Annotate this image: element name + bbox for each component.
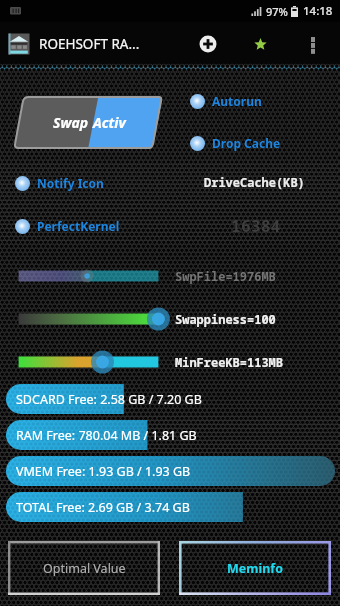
staticText: Activ bbox=[93, 113, 126, 132]
staticText: TOTAL Free: 2.69 GB / 3.74 GB bbox=[16, 499, 190, 516]
button[interactable]: Drop Cache bbox=[188, 133, 283, 153]
staticText: RAM Free: 780.04 MB / 1.81 GB bbox=[16, 427, 197, 444]
staticText: Autorun bbox=[212, 93, 262, 109]
button[interactable]: RAM Free: 780.04 MB / 1.81 GB bbox=[6, 420, 335, 450]
button[interactable]: Notify Icon bbox=[13, 173, 106, 193]
button[interactable]: Swap bbox=[13, 96, 163, 149]
staticText: Optimal Value bbox=[43, 560, 126, 577]
staticText: 97% bbox=[266, 4, 288, 19]
staticText: Drop Cache bbox=[212, 135, 281, 151]
staticText: 14:18 bbox=[303, 3, 333, 19]
staticText: 16384 bbox=[231, 214, 281, 236]
button[interactable]: Favorite bbox=[242, 26, 278, 62]
button[interactable]: Autorun bbox=[188, 91, 264, 111]
staticText: Meminfo bbox=[227, 560, 283, 577]
button[interactable]: MinFreeKB=113MB bbox=[8, 347, 170, 377]
button[interactable]: SDCARD Free: 2.58 GB / 7.20 GB bbox=[6, 384, 335, 414]
button[interactable]: Swappiness=100 bbox=[8, 304, 170, 334]
button[interactable]: Add bbox=[190, 26, 226, 62]
button[interactable]: SwpFile=1976MB bbox=[8, 261, 170, 291]
button[interactable]: Optimal Value bbox=[8, 541, 160, 595]
staticText: MinFreeKB=113MB bbox=[175, 354, 284, 370]
staticText: Swappiness=100 bbox=[175, 311, 276, 327]
staticText: Swap bbox=[53, 113, 89, 132]
staticText: SDCARD Free: 2.58 GB / 7.20 GB bbox=[16, 391, 202, 408]
staticText: ROEHSOFT RA... bbox=[39, 35, 140, 53]
button[interactable]: TOTAL Free: 2.69 GB / 3.74 GB bbox=[6, 492, 335, 522]
button[interactable]: Meminfo bbox=[179, 541, 331, 595]
button[interactable]: PerfectKernel bbox=[13, 216, 122, 236]
staticText: Notify Icon bbox=[37, 175, 104, 191]
button[interactable]: App icon bbox=[8, 33, 30, 55]
staticText: VMEM Free: 1.93 GB / 1.93 GB bbox=[16, 463, 191, 480]
button[interactable]: More options bbox=[295, 26, 331, 62]
staticText: SwpFile=1976MB bbox=[175, 268, 276, 284]
staticText: DriveCache(KB) bbox=[204, 174, 305, 190]
button[interactable]: VMEM Free: 1.93 GB / 1.93 GB bbox=[6, 456, 335, 486]
staticText: PerfectKernel bbox=[37, 218, 120, 234]
